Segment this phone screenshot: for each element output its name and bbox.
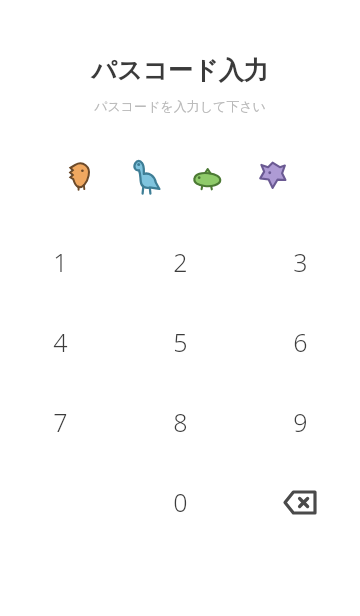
staticText: 8 xyxy=(173,405,188,439)
staticText: 1 xyxy=(53,245,68,279)
button[interactable]: 9 xyxy=(240,382,360,462)
button[interactable]: Passcode dot 4 xyxy=(258,161,286,189)
button[interactable]: Passcode dot 2 xyxy=(130,158,160,194)
button[interactable]: 5 xyxy=(120,302,240,382)
button[interactable]: Backspace xyxy=(240,462,360,542)
button[interactable]: 7 xyxy=(0,382,120,462)
staticText: 2 xyxy=(173,245,188,279)
button[interactable]: 2 xyxy=(120,222,240,302)
staticText: 5 xyxy=(173,325,188,359)
button[interactable]: Passcode dot 3 xyxy=(192,168,222,190)
staticText: 6 xyxy=(293,325,308,359)
button[interactable]: 6 xyxy=(240,302,360,382)
staticText: 3 xyxy=(293,245,308,279)
staticText: 4 xyxy=(53,325,68,359)
button[interactable]: 3 xyxy=(240,222,360,302)
staticText: パスコードを入力して下さい xyxy=(94,98,266,114)
button[interactable]: 4 xyxy=(0,302,120,382)
button[interactable]: Passcode dot 1 xyxy=(68,160,92,190)
button[interactable]: 1 xyxy=(0,222,120,302)
staticText: 0 xyxy=(173,485,188,519)
staticText: 9 xyxy=(293,405,308,439)
button[interactable]: 8 xyxy=(120,382,240,462)
button[interactable]: 0 xyxy=(120,462,240,542)
staticText: パスコード入力 xyxy=(91,55,269,86)
staticText: 7 xyxy=(53,405,68,439)
